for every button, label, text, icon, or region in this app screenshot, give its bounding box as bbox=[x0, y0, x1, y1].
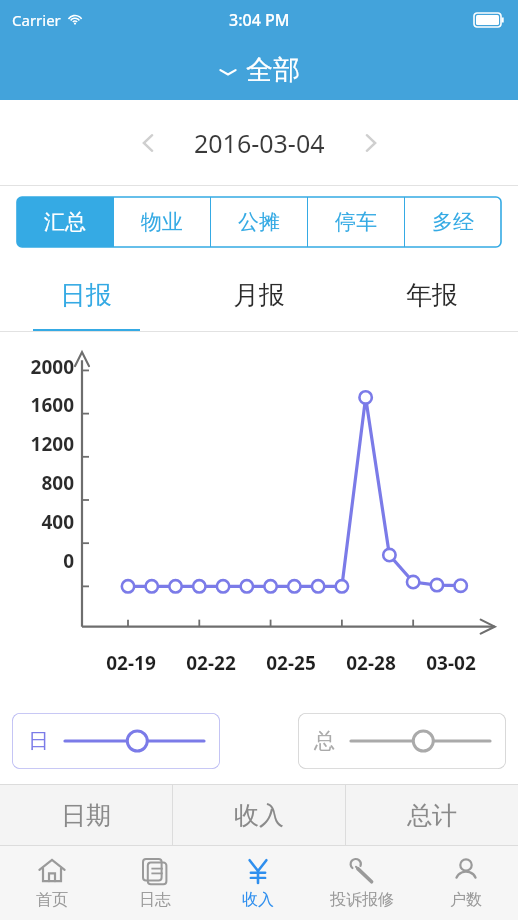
staticText: 物业 bbox=[141, 209, 183, 235]
staticText: 02-19 bbox=[92, 650, 170, 676]
button[interactable]: 年报 bbox=[345, 258, 518, 332]
staticText: 03-02 bbox=[412, 650, 490, 676]
staticText: 2000 bbox=[0, 354, 74, 380]
staticText: 800 bbox=[0, 470, 74, 496]
button[interactable]: Previous day bbox=[124, 119, 172, 167]
staticText: 1600 bbox=[0, 392, 74, 418]
button[interactable]: 收入 bbox=[172, 784, 345, 846]
staticText: 多经 bbox=[432, 209, 474, 235]
button[interactable]: 停车 bbox=[307, 197, 404, 247]
button[interactable]: 月报 bbox=[172, 258, 345, 332]
staticText: 户数 bbox=[450, 890, 482, 910]
staticText: 投诉报修 bbox=[330, 890, 394, 910]
staticText: 400 bbox=[0, 509, 74, 535]
staticText: 月报 bbox=[233, 279, 285, 312]
button[interactable]: 多经 bbox=[404, 197, 501, 247]
staticText: 总 bbox=[314, 728, 335, 754]
button[interactable]: 户数 bbox=[414, 846, 518, 920]
staticText: Carrier bbox=[12, 10, 61, 30]
staticText: 日志 bbox=[139, 890, 171, 910]
button[interactable]: 日志 bbox=[103, 846, 206, 920]
staticText: 日 bbox=[28, 728, 49, 754]
staticText: 首页 bbox=[36, 890, 68, 910]
staticText: 0 bbox=[0, 548, 74, 574]
button[interactable]: 投诉报修 bbox=[310, 846, 414, 920]
staticText: 日期 bbox=[61, 800, 111, 831]
staticText: 1200 bbox=[0, 431, 74, 457]
button[interactable]: 全部 bbox=[0, 40, 518, 100]
staticText: 收入 bbox=[234, 800, 284, 831]
staticText: 02-28 bbox=[332, 650, 410, 676]
button[interactable]: 汇总 bbox=[17, 197, 113, 247]
staticText: 02-22 bbox=[172, 650, 250, 676]
button[interactable]: 总 bbox=[298, 713, 506, 769]
staticText: 3:04 PM bbox=[229, 9, 290, 31]
button[interactable]: Next day bbox=[347, 119, 395, 167]
button[interactable]: 总计 bbox=[345, 784, 518, 846]
staticText: 汇总 bbox=[44, 209, 86, 235]
button[interactable]: 日期 bbox=[0, 784, 172, 846]
staticText: 年报 bbox=[406, 279, 458, 312]
staticText: 日报 bbox=[60, 279, 112, 312]
staticText: 公摊 bbox=[238, 209, 280, 235]
button[interactable]: 日 bbox=[12, 713, 220, 769]
staticText: 2016-03-04 bbox=[194, 126, 325, 160]
button[interactable]: 首页 bbox=[0, 846, 103, 920]
button[interactable]: 收入 bbox=[206, 846, 310, 920]
staticText: 全部 bbox=[246, 53, 300, 87]
staticText: 停车 bbox=[335, 209, 377, 235]
button[interactable]: 公摊 bbox=[210, 197, 307, 247]
button[interactable]: 日报 bbox=[0, 258, 172, 332]
staticText: 02-25 bbox=[252, 650, 330, 676]
button[interactable]: 物业 bbox=[113, 197, 210, 247]
staticText: 收入 bbox=[242, 890, 274, 910]
staticText: 总计 bbox=[407, 800, 457, 831]
